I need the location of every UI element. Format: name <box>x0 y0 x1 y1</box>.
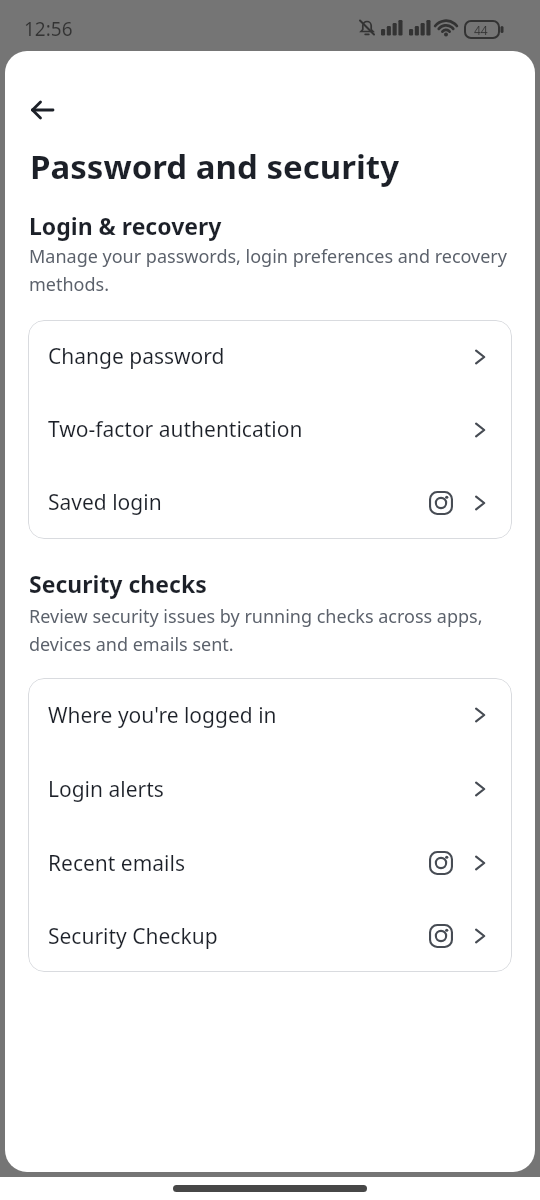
button[interactable]: Two-factor authentication <box>28 393 512 466</box>
button[interactable]: Security Checkup <box>28 900 512 972</box>
staticText: Recent emails <box>48 849 186 878</box>
button[interactable]: Where you're logged in <box>28 678 512 752</box>
staticText: Review security issues by running checks… <box>29 604 483 656</box>
staticText: Login alerts <box>48 775 164 804</box>
staticText: Where you're logged in <box>48 701 277 730</box>
staticText: Manage your passwords, login preferences… <box>29 244 507 296</box>
staticText: Security checks <box>29 568 207 599</box>
button[interactable]: Login alerts <box>28 752 512 826</box>
staticText: Login & recovery <box>29 210 222 241</box>
button[interactable]: Saved login <box>28 466 512 539</box>
staticText: 44 <box>474 22 488 38</box>
staticText: Two-factor authentication <box>48 415 303 444</box>
button[interactable] <box>25 93 59 127</box>
button[interactable]: Change password <box>28 320 512 393</box>
staticText: Security Checkup <box>48 922 218 951</box>
staticText: Change password <box>48 342 225 371</box>
staticText: 12:56 <box>24 16 73 42</box>
staticText: Password and security <box>30 144 399 189</box>
button[interactable]: Recent emails <box>28 826 512 900</box>
staticText: Saved login <box>48 488 162 517</box>
